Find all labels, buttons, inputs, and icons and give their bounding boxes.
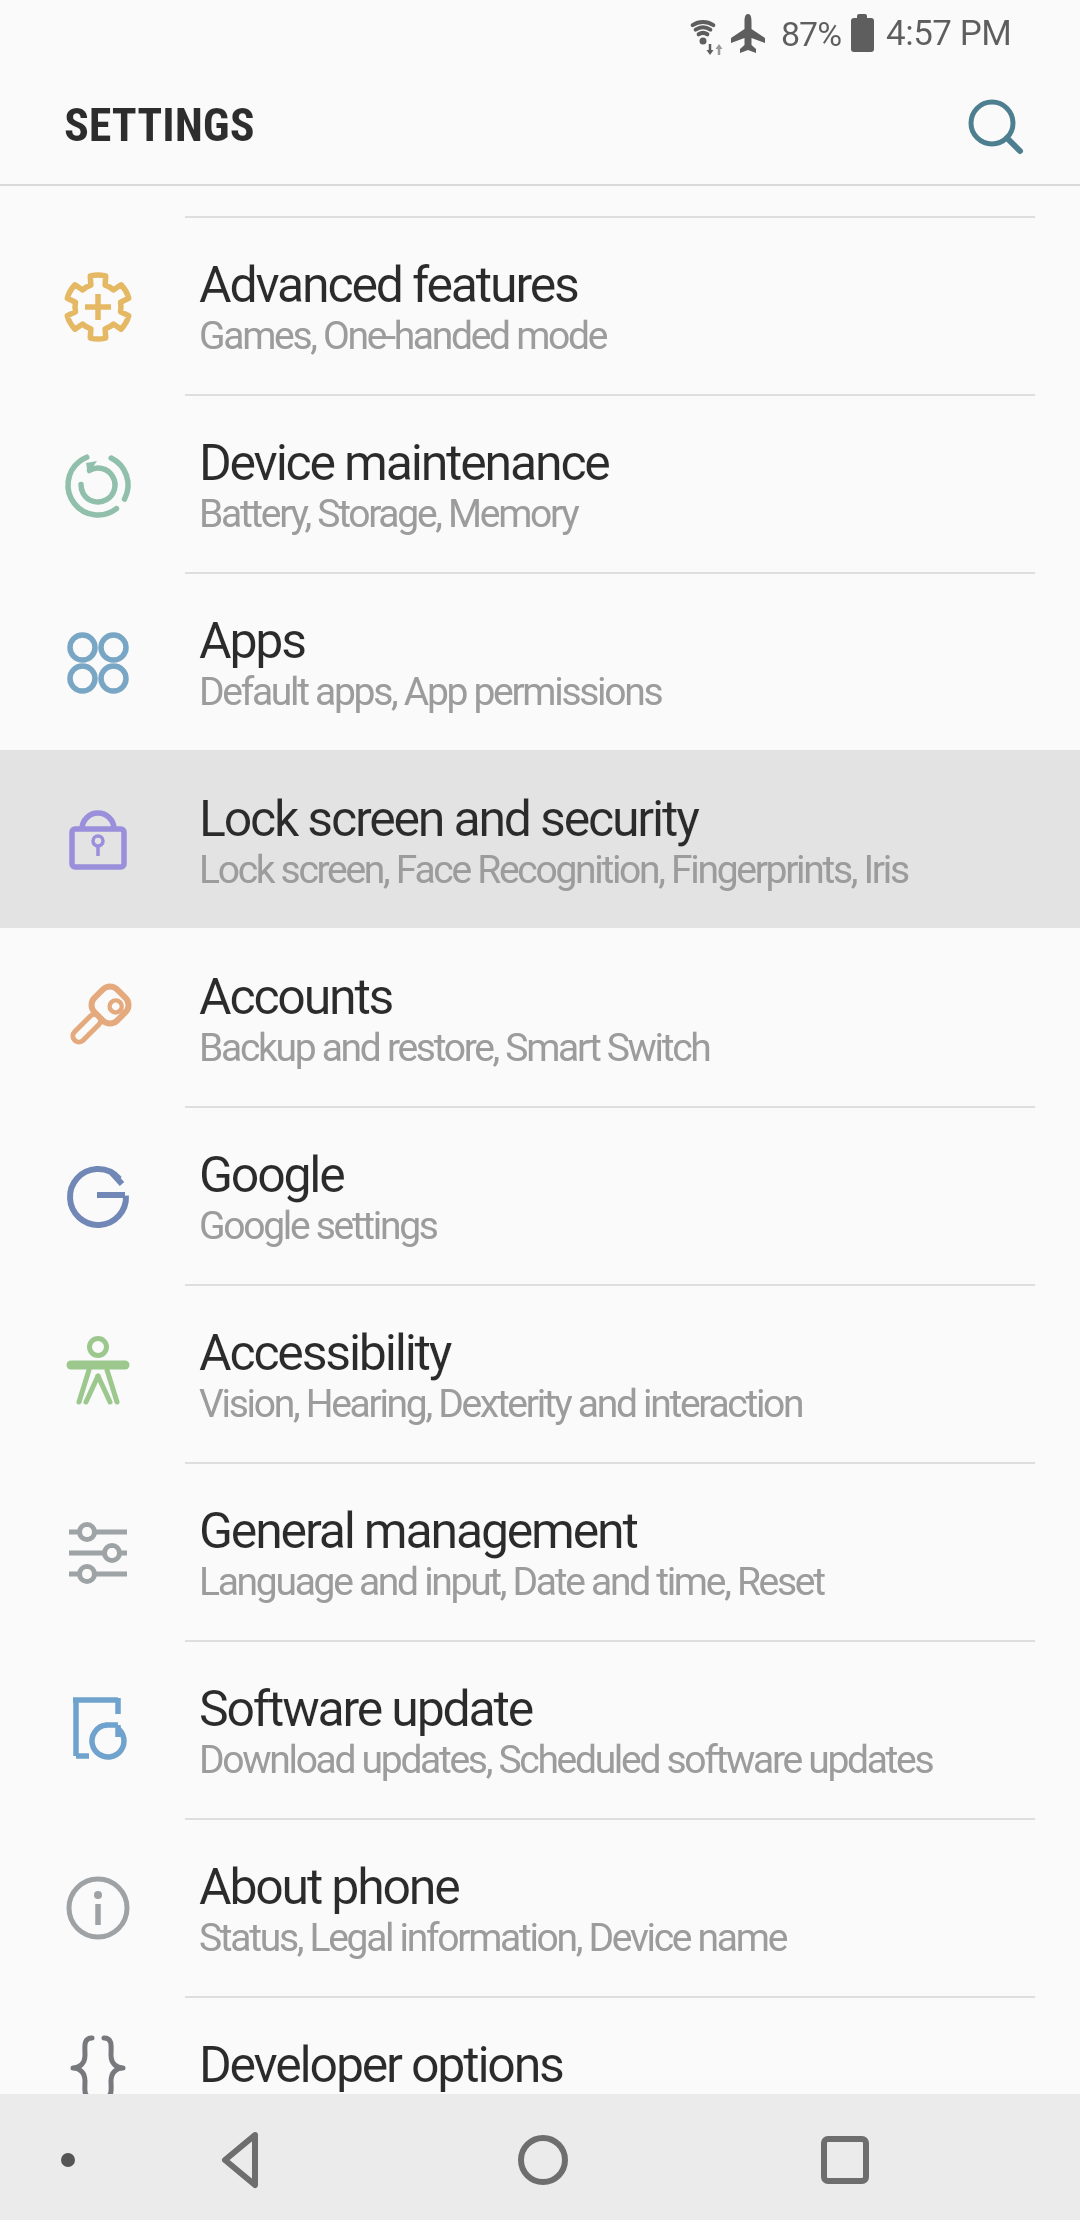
staticText: SETTINGS xyxy=(64,98,255,152)
staticText: Accessibility xyxy=(199,1324,451,1383)
button[interactable]: Lock screen and security xyxy=(0,750,1080,928)
button[interactable]: Accounts xyxy=(0,928,1080,1106)
staticText: Language and input, Date and time, Reset xyxy=(199,1559,824,1605)
button[interactable]: About phone xyxy=(0,1818,1080,1996)
staticText: Apps xyxy=(199,612,305,671)
staticText: Advanced features xyxy=(199,256,578,315)
staticText: 4:57 PM xyxy=(886,13,1012,54)
staticText: Download updates, Scheduled software upd… xyxy=(199,1737,933,1783)
button[interactable] xyxy=(488,2102,598,2212)
staticText: Lock screen and security xyxy=(199,790,698,849)
staticText: Status, Legal information, Device name xyxy=(199,1915,787,1961)
button[interactable]: Device maintenance xyxy=(0,394,1080,572)
staticText: Developer options xyxy=(199,2036,563,2095)
staticText: Lock screen, Face Recognition, Fingerpri… xyxy=(199,847,908,893)
button[interactable]: Apps xyxy=(0,572,1080,750)
staticText: Device maintenance xyxy=(199,434,609,493)
staticText: Vision, Hearing, Dexterity and interacti… xyxy=(199,1381,803,1427)
staticText: Battery, Storage, Memory xyxy=(199,491,578,537)
staticText: 87% xyxy=(781,14,842,54)
button[interactable] xyxy=(185,2102,295,2212)
staticText: General management xyxy=(199,1502,637,1561)
staticText: Backup and restore, Smart Switch xyxy=(199,1025,710,1071)
staticText: Software update xyxy=(199,1680,533,1739)
button[interactable] xyxy=(790,2102,900,2212)
button[interactable] xyxy=(952,82,1032,162)
staticText: About phone xyxy=(199,1858,459,1917)
staticText: Accounts xyxy=(199,968,393,1027)
button[interactable]: Software update xyxy=(0,1640,1080,1818)
staticText: Google xyxy=(199,1146,344,1205)
button[interactable]: Advanced features xyxy=(0,216,1080,394)
button[interactable]: Google xyxy=(0,1106,1080,1284)
staticText: Games, One-handed mode xyxy=(199,313,607,359)
button[interactable]: Accessibility xyxy=(0,1284,1080,1462)
staticText: Default apps, App permissions xyxy=(199,669,662,715)
button[interactable]: General management xyxy=(0,1462,1080,1640)
button[interactable]: Developer options xyxy=(0,1996,1080,2174)
staticText: Google settings xyxy=(199,1203,437,1249)
